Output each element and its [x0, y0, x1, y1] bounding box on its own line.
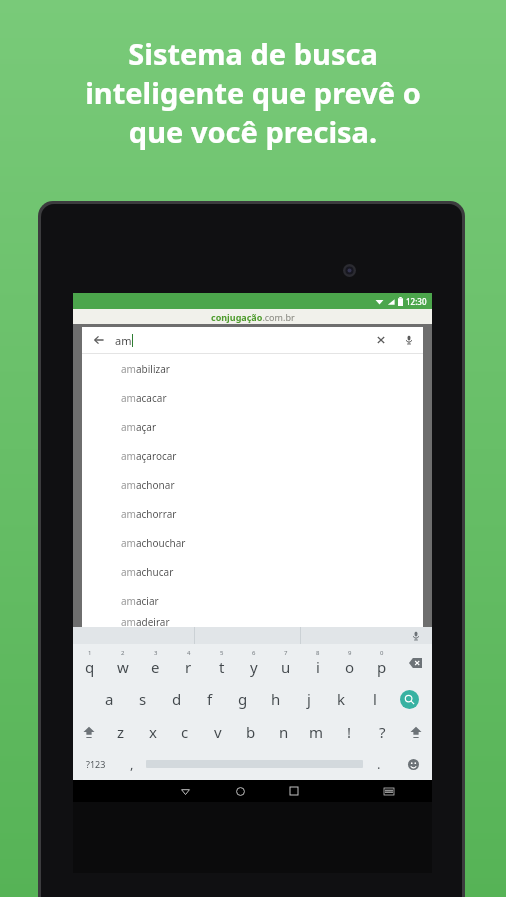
button[interactable]: Recent apps	[267, 780, 321, 802]
button[interactable]: c	[169, 716, 201, 748]
button[interactable]: z	[105, 716, 137, 748]
button[interactable]: 2	[106, 644, 139, 682]
staticText: amadeirar	[121, 615, 170, 627]
staticText: v	[214, 722, 222, 742]
button[interactable]: Clear	[367, 327, 395, 353]
button[interactable]: Back	[82, 327, 423, 353]
button[interactable]: .	[363, 748, 394, 780]
staticText: 6	[252, 649, 256, 657]
staticText: amachucar	[121, 565, 174, 579]
staticText: amabilizar	[121, 362, 170, 376]
staticText: inteligente que prevê o	[0, 73, 506, 112]
button[interactable]: ?123	[73, 748, 118, 780]
button[interactable]: amaciar	[82, 586, 423, 615]
staticText: conjugação.com.br	[211, 311, 295, 323]
staticText: q	[85, 657, 95, 677]
button[interactable]: Space	[146, 748, 363, 780]
staticText: 3	[154, 649, 158, 657]
button[interactable]: 6	[238, 644, 270, 682]
staticText: p	[377, 657, 387, 677]
staticText: b	[246, 722, 256, 742]
staticText: i	[316, 657, 320, 677]
button[interactable]: Backspace	[398, 644, 432, 682]
button[interactable]: h	[259, 682, 292, 716]
staticText: r	[185, 657, 192, 677]
staticText: amachorrar	[121, 507, 177, 521]
staticText: 1	[88, 649, 92, 657]
staticText: j	[307, 689, 311, 709]
button[interactable]: m	[300, 716, 333, 748]
staticText: ?	[379, 722, 386, 742]
staticText: n	[279, 722, 289, 742]
button[interactable]: Home	[213, 780, 267, 802]
staticText: f	[207, 689, 213, 709]
staticText: x	[149, 722, 157, 742]
staticText: c	[181, 722, 189, 742]
staticText: w	[117, 657, 129, 677]
button[interactable]: amachorrar	[82, 499, 423, 528]
button[interactable]: !	[333, 716, 366, 748]
button[interactable]: f	[193, 682, 226, 716]
button[interactable]: Back	[158, 780, 213, 802]
staticText: k	[337, 689, 346, 709]
staticText: 4	[187, 649, 191, 657]
staticText: y	[250, 657, 258, 677]
staticText: Sistema de busca	[0, 34, 506, 73]
button[interactable]: 0	[366, 644, 398, 682]
button[interactable]: 9	[334, 644, 366, 682]
staticText: g	[238, 689, 248, 709]
button[interactable]: ,	[118, 748, 146, 780]
staticText: t	[219, 657, 225, 677]
button[interactable]: ?	[366, 716, 399, 748]
button[interactable]: Switch keyboard	[362, 780, 416, 802]
button[interactable]: a	[92, 682, 126, 716]
button[interactable]: amabilizar	[82, 354, 423, 383]
button[interactable]: g	[226, 682, 259, 716]
staticText: s	[139, 689, 147, 709]
staticText: 9	[348, 649, 352, 657]
button[interactable]: v	[201, 716, 234, 748]
button[interactable]: n	[267, 716, 300, 748]
button[interactable]: 4	[172, 644, 205, 682]
button[interactable]: amaçar	[82, 412, 423, 441]
staticText: 5	[220, 649, 224, 657]
button[interactable]: l	[358, 682, 391, 716]
button[interactable]: b	[234, 716, 267, 748]
button[interactable]: amadeirar	[82, 615, 423, 627]
staticText: 0	[380, 649, 384, 657]
staticText: 12:30	[406, 296, 427, 307]
button[interactable]: amacacar	[82, 383, 423, 412]
staticText: amaciar	[121, 594, 159, 608]
staticText: l	[373, 689, 377, 709]
button[interactable]: 1	[73, 644, 106, 682]
button[interactable]: k	[325, 682, 358, 716]
staticText: amacacar	[121, 391, 167, 405]
button[interactable]: amachucar	[82, 557, 423, 586]
button[interactable]: Search	[391, 682, 428, 716]
button[interactable]: amaçarocar	[82, 441, 423, 470]
button[interactable]: Shift	[399, 716, 432, 748]
button[interactable]: 7	[270, 644, 302, 682]
staticText: u	[281, 657, 291, 677]
staticText: o	[345, 657, 355, 677]
button[interactable]: d	[160, 682, 193, 716]
button[interactable]: 8	[302, 644, 334, 682]
button[interactable]: Emoji	[394, 748, 432, 780]
button[interactable]: 5	[205, 644, 238, 682]
button[interactable]: Voice search	[395, 327, 423, 353]
staticText: amaçarocar	[121, 449, 177, 463]
button[interactable]: amachonar	[82, 470, 423, 499]
button[interactable]: Back	[82, 327, 115, 353]
button[interactable]: Voice input	[411, 631, 421, 641]
button[interactable]: 3	[139, 644, 172, 682]
staticText: z	[117, 722, 125, 742]
staticText: e	[151, 657, 160, 677]
button[interactable]: s	[126, 682, 160, 716]
staticText: 8	[316, 649, 320, 657]
button[interactable]: x	[137, 716, 169, 748]
staticText: a	[105, 689, 114, 709]
button[interactable]: amachouchar	[82, 528, 423, 557]
staticText: amaçar	[121, 420, 157, 434]
button[interactable]: j	[292, 682, 325, 716]
button[interactable]: Shift	[73, 716, 105, 748]
